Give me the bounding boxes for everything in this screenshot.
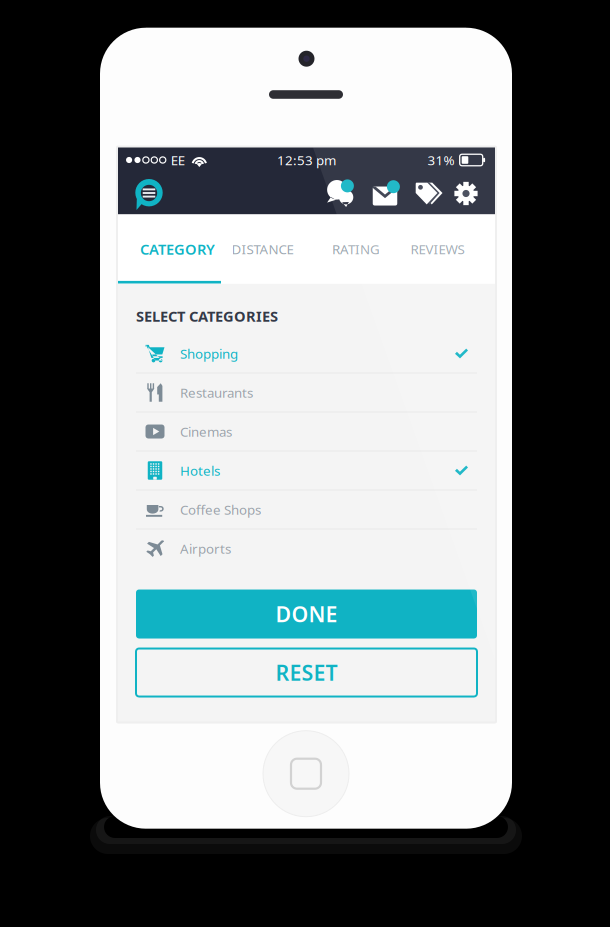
button[interactable]: Messages xyxy=(320,173,360,213)
staticText: REVIEWS xyxy=(410,240,464,258)
staticText: 31% xyxy=(427,151,454,169)
button[interactable]: RESET xyxy=(136,648,477,696)
staticText: RATING xyxy=(332,240,380,258)
staticText: SELECT CATEGORIES xyxy=(136,306,278,326)
staticText: DONE xyxy=(275,600,337,628)
button[interactable]: Coffee Shops xyxy=(136,490,477,529)
button[interactable]: Restaurants xyxy=(136,373,477,412)
button[interactable]: DONE xyxy=(136,589,477,638)
staticText: RESET xyxy=(275,658,337,687)
button[interactable]: RATING xyxy=(309,214,397,283)
button[interactable]: Hotels xyxy=(136,451,477,490)
button[interactable]: Mail xyxy=(365,173,405,213)
button[interactable]: REVIEWS xyxy=(397,214,495,283)
button[interactable]: Settings xyxy=(446,173,486,213)
button[interactable]: Cinemas xyxy=(136,412,477,451)
staticText: Airports xyxy=(180,540,231,557)
staticText: CATEGORY xyxy=(140,239,215,259)
button[interactable]: DISTANCE xyxy=(221,214,309,283)
staticText: Coffee Shops xyxy=(180,501,261,518)
staticText: EE xyxy=(171,151,185,169)
staticText: Restaurants xyxy=(180,384,253,401)
staticText: Cinemas xyxy=(180,423,232,440)
staticText: 12:53 pm xyxy=(277,151,336,169)
button[interactable]: Menu xyxy=(127,172,171,214)
staticText: Shopping xyxy=(180,345,238,362)
button[interactable]: Tags xyxy=(409,173,449,213)
button[interactable]: Shopping xyxy=(136,334,477,373)
staticText: DISTANCE xyxy=(231,240,293,258)
button[interactable]: Airports xyxy=(136,529,477,568)
button[interactable]: CATEGORY xyxy=(118,214,221,283)
staticText: Hotels xyxy=(180,462,220,479)
